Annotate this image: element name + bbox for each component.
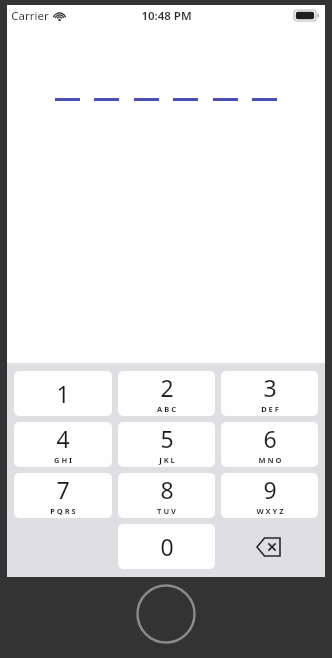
button[interactable]: 7 bbox=[14, 473, 112, 518]
button[interactable]: 8 bbox=[118, 473, 215, 518]
button[interactable]: Backspace bbox=[221, 524, 318, 569]
staticText: P Q R S bbox=[50, 506, 76, 516]
staticText: 7 bbox=[56, 474, 70, 505]
staticText: Carrier bbox=[11, 8, 49, 24]
button[interactable]: 1 bbox=[14, 371, 112, 416]
button[interactable]: 4 bbox=[14, 422, 112, 467]
staticText: W X Y Z bbox=[256, 506, 284, 516]
staticText: M N O bbox=[258, 455, 282, 465]
staticText: 9 bbox=[263, 474, 277, 505]
button[interactable]: 0 bbox=[118, 524, 215, 569]
button[interactable]: 9 bbox=[221, 473, 318, 518]
staticText: 0 bbox=[160, 531, 174, 562]
staticText: 3 bbox=[263, 372, 277, 403]
other: Home bbox=[136, 584, 196, 644]
button[interactable]: 6 bbox=[221, 422, 318, 467]
staticText: 10:48 PM bbox=[141, 8, 192, 24]
button[interactable]: 5 bbox=[118, 422, 215, 467]
staticText: 6 bbox=[263, 423, 277, 454]
button[interactable]: 2 bbox=[118, 371, 215, 416]
staticText: J K L bbox=[159, 455, 175, 465]
staticText: 5 bbox=[160, 423, 174, 454]
staticText: 1 bbox=[56, 378, 70, 409]
staticText: T U V bbox=[157, 506, 176, 516]
staticText: G H I bbox=[54, 455, 72, 465]
staticText: 8 bbox=[160, 474, 174, 505]
button[interactable]: 3 bbox=[221, 371, 318, 416]
staticText: 2 bbox=[160, 372, 174, 403]
staticText: A B C bbox=[157, 404, 176, 414]
staticText: 4 bbox=[56, 423, 70, 454]
staticText: D E F bbox=[261, 404, 279, 414]
